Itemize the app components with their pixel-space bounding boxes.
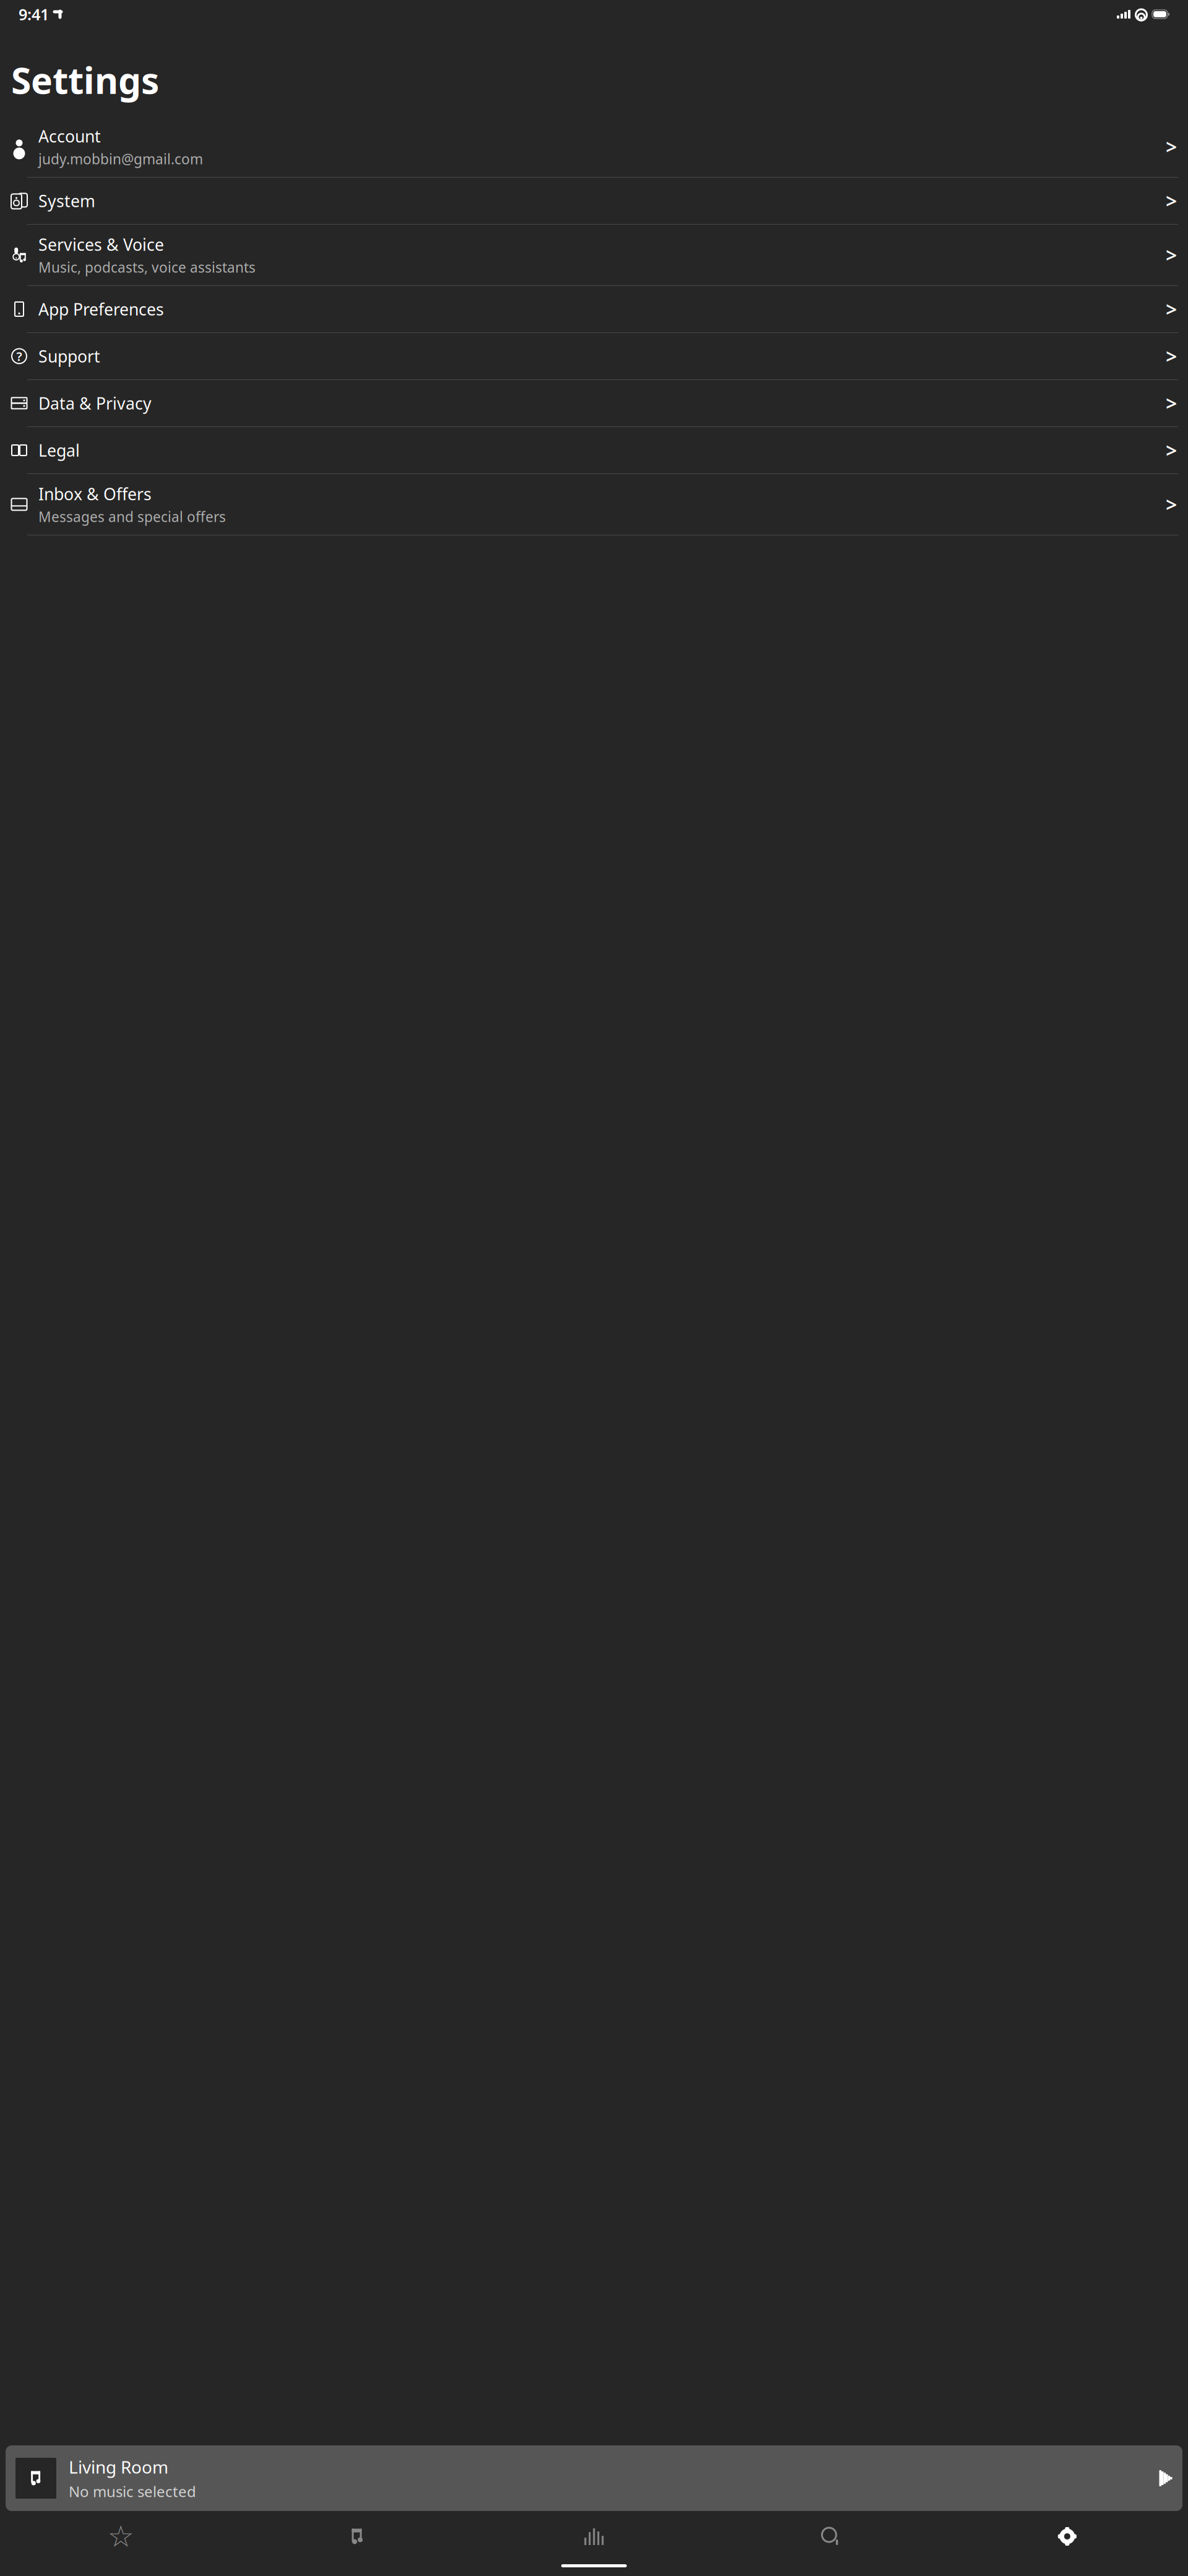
staticText: > <box>1166 390 1177 416</box>
button[interactable]: Settings <box>949 2513 1186 2559</box>
staticText: Living Room <box>69 2455 168 2478</box>
staticText: > <box>1166 134 1177 160</box>
staticText: ? <box>16 348 22 364</box>
button[interactable]: Data & Privacy <box>0 380 1188 426</box>
staticText: Legal <box>38 439 80 461</box>
staticText: 9:41 <box>19 4 49 25</box>
button[interactable]: Favorites <box>2 2513 239 2559</box>
staticText: App Preferences <box>38 298 164 320</box>
staticText: > <box>1166 296 1177 322</box>
staticText: > <box>1166 491 1177 518</box>
button[interactable]: ? <box>0 333 1188 379</box>
button[interactable]: Search <box>712 2513 949 2559</box>
button[interactable]: App Preferences <box>0 286 1188 332</box>
staticText: > <box>1166 343 1177 369</box>
staticText: Settings <box>11 56 159 104</box>
staticText: > <box>1166 242 1177 268</box>
staticText: Account <box>38 125 101 147</box>
staticText: System <box>38 190 95 212</box>
staticText: > <box>1166 188 1177 214</box>
button[interactable]: Services & Voice <box>0 225 1188 285</box>
button[interactable]: Account <box>0 116 1188 177</box>
staticText: judy.mobbin@gmail.com <box>38 150 203 168</box>
button[interactable]: Browse <box>476 2513 712 2559</box>
staticText: Inbox & Offers <box>38 483 152 505</box>
button[interactable]: Music <box>239 2513 476 2559</box>
staticText: Support <box>38 345 100 367</box>
button[interactable]: Inbox & Offers <box>0 474 1188 535</box>
button[interactable]: Legal <box>0 427 1188 473</box>
staticText: No music selected <box>69 2481 196 2501</box>
staticText: Data & Privacy <box>38 392 152 414</box>
button[interactable]: Living Room <box>6 2445 1182 2511</box>
button[interactable]: System <box>0 178 1188 224</box>
staticText: Music, podcasts, voice assistants <box>38 258 256 276</box>
staticText: Services & Voice <box>38 233 164 255</box>
staticText: > <box>1166 437 1177 463</box>
staticText: ☆ <box>107 2520 134 2553</box>
staticText: Messages and special offers <box>38 507 226 526</box>
